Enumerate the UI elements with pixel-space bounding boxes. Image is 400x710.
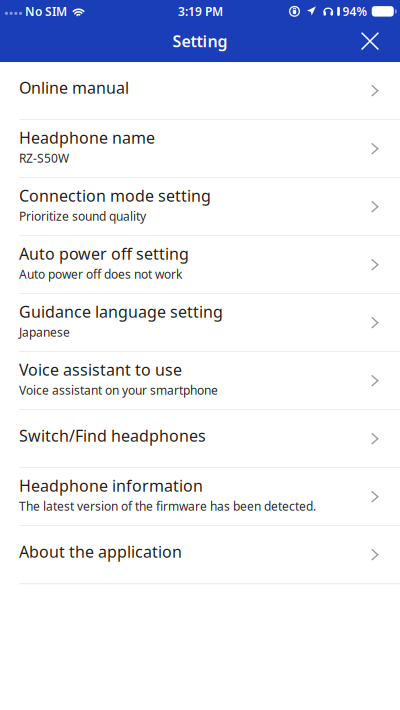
button[interactable]: Guidance language setting [0,294,400,351]
button[interactable]: Voice assistant to use [0,352,400,409]
staticText: Prioritize sound quality [19,208,146,224]
button[interactable]: Auto power off setting [0,236,400,293]
staticText: 94% [342,3,367,19]
button[interactable]: Connection mode setting [0,178,400,235]
staticText: The latest version of the firmware has b… [19,498,316,514]
staticText: Headphone information [19,475,203,496]
staticText: Headphone name [19,127,155,148]
staticText: Auto power off does not work [19,266,182,282]
staticText: RZ-S50W [19,150,69,166]
button[interactable]: Headphone name [0,120,400,177]
button[interactable]: About the application [0,526,400,583]
staticText: No SIM [25,3,67,19]
button[interactable]: Switch/Find headphones [0,410,400,467]
button[interactable]: Headphone information [0,468,400,525]
staticText: Guidance language setting [19,301,223,322]
staticText: 3:19 PM [178,3,223,19]
staticText: Voice assistant to use [19,359,182,380]
staticText: Japanese [19,324,70,340]
staticText: Setting [172,30,227,52]
staticText: Auto power off setting [19,243,189,264]
button[interactable]: Close [347,23,393,62]
staticText: Switch/Find headphones [19,425,206,446]
staticText: About the application [19,541,182,562]
staticText: Connection mode setting [19,185,211,206]
staticText: Online manual [19,77,129,98]
button[interactable]: Online manual [0,62,400,119]
staticText: Voice assistant on your smartphone [19,382,218,398]
